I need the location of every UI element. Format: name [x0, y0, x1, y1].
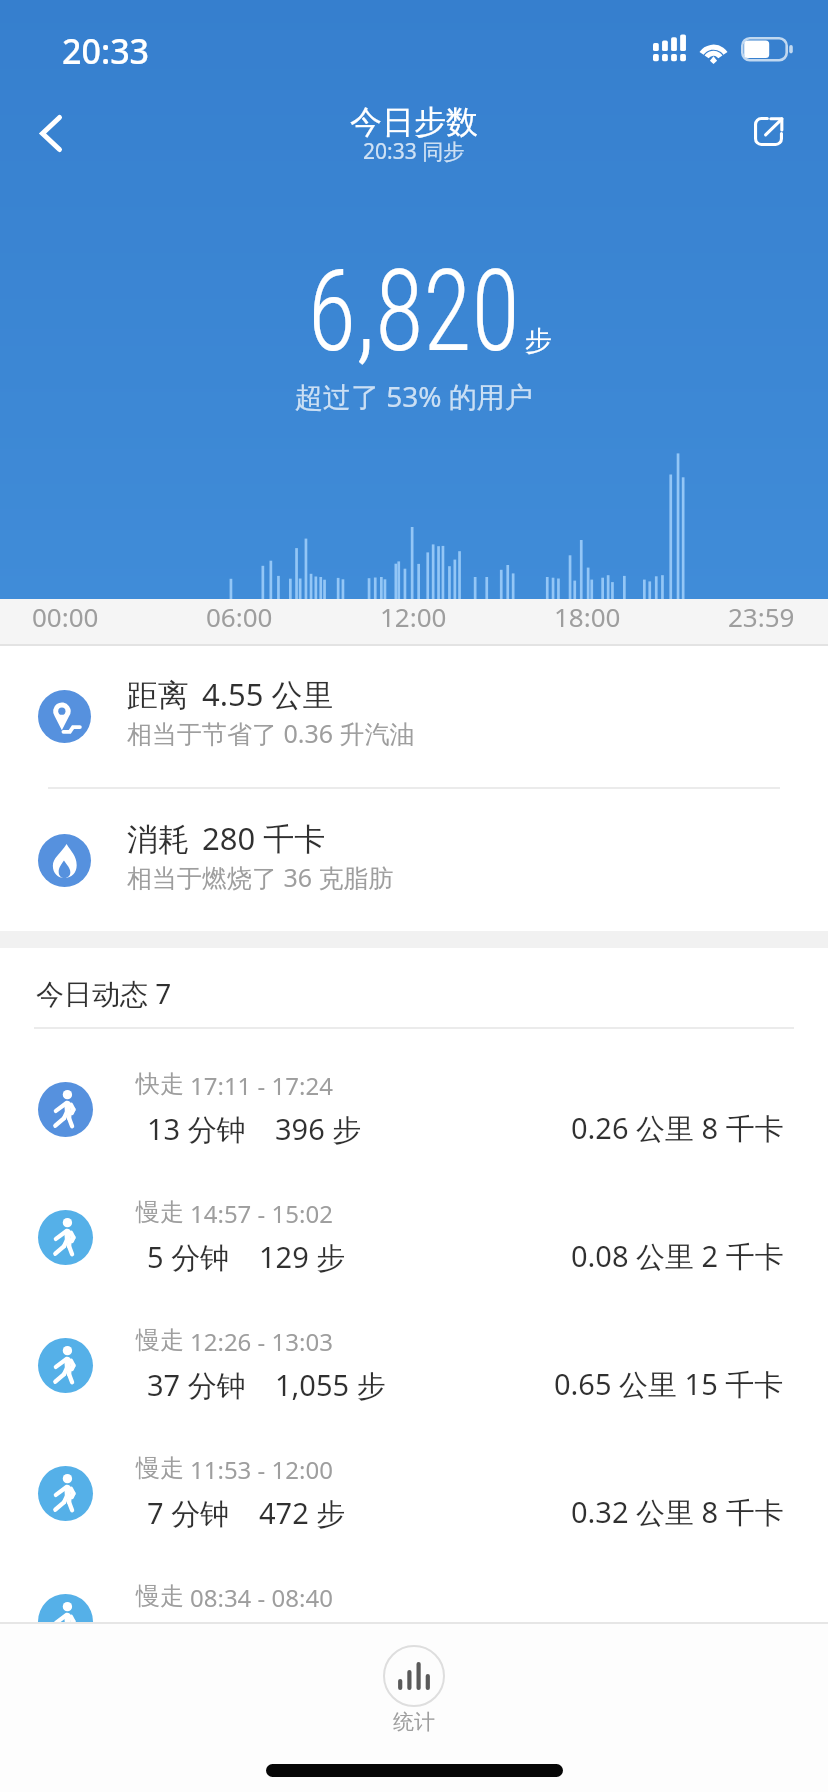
staticText: 相当于节省了 0.36 升汽油 [127, 716, 415, 750]
staticText: 统计 [393, 1709, 435, 1735]
staticText: 1,055 步 [275, 1365, 386, 1405]
button[interactable]: 快走 [0, 1051, 828, 1179]
staticText: 17:11 - 17:24 [190, 1069, 333, 1102]
staticText: 23:59 [728, 599, 795, 634]
staticText: 0.08 公里 2 千卡 [571, 1236, 784, 1276]
staticText: 13 分钟 [147, 1109, 246, 1149]
button[interactable]: 慢走 [0, 1307, 828, 1435]
button[interactable]: 统计 [383, 1645, 445, 1735]
staticText: 相当于燃烧了 36 克脂肪 [127, 860, 394, 894]
staticText: 快走 [136, 1069, 184, 1099]
staticText: 今日动态 7 [36, 974, 172, 1012]
staticText: 18:00 [554, 599, 621, 634]
button[interactable]: 慢走 [0, 1435, 828, 1563]
staticText: 00:00 [32, 599, 99, 634]
staticText: 慢走 [136, 1197, 184, 1227]
staticText: 37 分钟 [147, 1365, 246, 1405]
staticText: 210 步 [259, 1621, 346, 1661]
staticText: 11:53 - 12:00 [190, 1453, 333, 1486]
staticText: 超过了 53% 的用户 [295, 377, 533, 415]
staticText: 0.14 公里 4 千卡 [571, 1620, 784, 1660]
staticText: 今日步数 [350, 102, 478, 142]
staticText: 06:00 [206, 599, 273, 634]
button[interactable]: Share [722, 85, 814, 177]
staticText: 12:00 [380, 599, 447, 634]
staticText: 6,820 [308, 244, 520, 378]
staticText: 396 步 [275, 1109, 362, 1149]
staticText: 129 步 [259, 1237, 346, 1277]
staticText: 0.32 公里 8 千卡 [571, 1492, 784, 1532]
staticText: 慢走 [136, 1325, 184, 1355]
staticText: 慢走 [136, 1453, 184, 1483]
staticText: 慢走 [136, 1581, 184, 1611]
staticText: 4.55 公里 [202, 673, 334, 715]
staticText: 5 分钟 [147, 1237, 230, 1277]
staticText: 280 千卡 [202, 817, 326, 859]
staticText: 20:33 [62, 28, 150, 74]
staticText: 14:57 - 15:02 [190, 1197, 333, 1230]
button[interactable]: 距离 [0, 646, 828, 787]
staticText: 20:33 同步 [363, 137, 465, 166]
button[interactable]: Back [4, 87, 97, 180]
button[interactable]: 消耗 [0, 789, 828, 931]
staticText: 距离 [127, 676, 189, 715]
staticText: 0.65 公里 15 千卡 [554, 1364, 784, 1404]
staticText: 6 分钟 [147, 1621, 230, 1661]
staticText: 12:26 - 13:03 [190, 1325, 333, 1358]
staticText: 7 分钟 [147, 1493, 230, 1533]
staticText: 消耗 [127, 820, 189, 859]
staticText: 步 [525, 324, 552, 358]
staticText: 0.26 公里 8 千卡 [571, 1108, 784, 1148]
button[interactable]: 慢走 [0, 1179, 828, 1307]
staticText: 08:34 - 08:40 [190, 1581, 333, 1614]
staticText: 472 步 [259, 1493, 346, 1533]
button[interactable]: 慢走 [0, 1563, 828, 1691]
